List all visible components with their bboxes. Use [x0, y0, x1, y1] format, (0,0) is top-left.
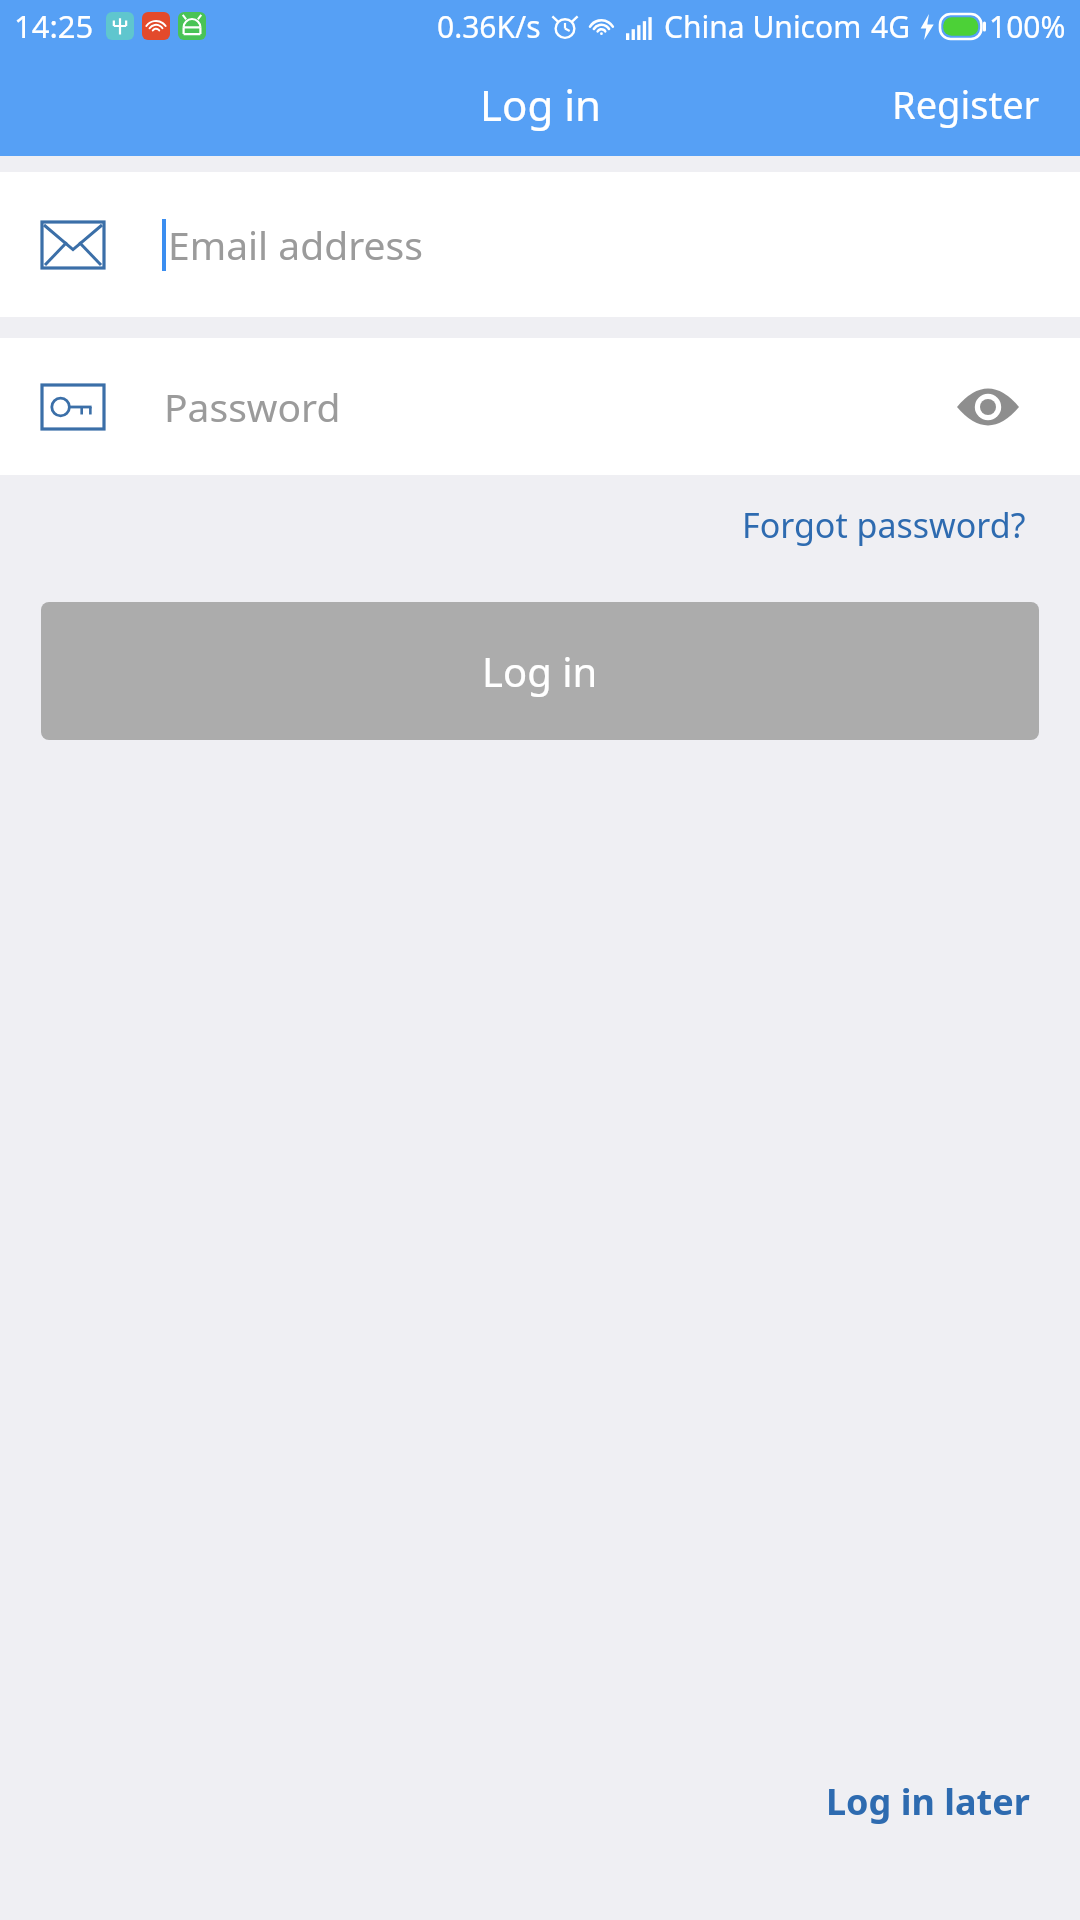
staticText: Email address [168, 218, 423, 271]
button[interactable]: Forgot password? [738, 496, 1030, 554]
staticText: Log in [482, 644, 598, 698]
staticText: 0.36K/s [437, 6, 541, 47]
button[interactable]: Log in later [820, 1769, 1036, 1834]
staticText: 4G [871, 6, 910, 47]
button[interactable]: Email address [0, 172, 1080, 317]
staticText: 100% [989, 6, 1066, 47]
staticText: Log in [480, 76, 601, 133]
staticText: Register [892, 78, 1040, 130]
button[interactable]: Show password [940, 359, 1036, 455]
button[interactable]: Password [0, 338, 1080, 475]
staticText: 14:25 [14, 5, 94, 47]
staticText: Password [164, 380, 341, 433]
staticText: Log in later [826, 1777, 1030, 1826]
staticText: China Unicom [664, 6, 862, 47]
staticText: Forgot password? [742, 502, 1026, 548]
button[interactable]: Log in [41, 602, 1039, 740]
button[interactable]: Register [852, 60, 1080, 148]
